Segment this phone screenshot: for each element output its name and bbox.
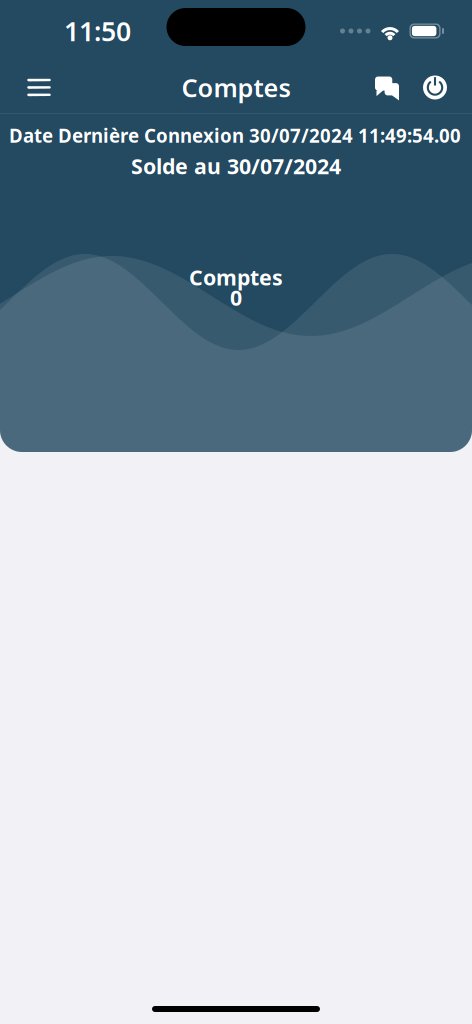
- button[interactable]: Déconnexion: [411, 63, 459, 111]
- button[interactable]: Menu: [13, 64, 65, 110]
- staticText: Date Dernière Connexion 30/07/2024 11:49…: [9, 123, 461, 148]
- staticText: Solde au 30/07/2024: [131, 152, 341, 180]
- staticText: 0: [230, 283, 242, 312]
- staticText: 11:50: [64, 13, 131, 49]
- button[interactable]: Messages: [363, 64, 411, 110]
- staticText: Comptes: [189, 263, 283, 291]
- staticText: Comptes: [181, 71, 290, 104]
